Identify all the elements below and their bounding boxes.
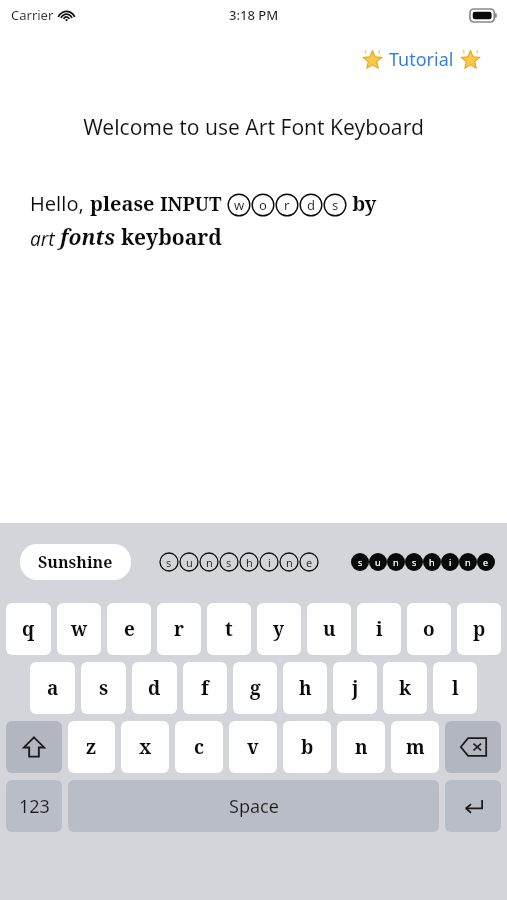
button[interactable]: s <box>155 548 323 576</box>
staticText: o <box>259 196 267 214</box>
staticText: u <box>375 556 381 568</box>
staticText: d <box>307 196 315 214</box>
staticText: r <box>284 196 290 214</box>
button[interactable]: Return <box>445 780 501 832</box>
button[interactable]: Sunshine <box>20 544 131 580</box>
staticText: n <box>393 556 399 568</box>
button[interactable]: f <box>183 662 227 714</box>
button[interactable]: e <box>107 603 151 655</box>
button[interactable]: Shift <box>6 721 62 773</box>
staticText: s <box>358 556 363 568</box>
staticText: Hello, <box>30 190 90 217</box>
staticText: w <box>234 196 245 214</box>
staticText: by <box>347 190 377 217</box>
staticText: l <box>452 675 459 701</box>
staticText: u <box>323 616 336 642</box>
staticText: p <box>473 616 486 642</box>
staticText: please <box>90 190 160 217</box>
staticText: fonts <box>60 223 121 252</box>
button[interactable]: s <box>81 662 126 714</box>
staticText: d <box>148 675 161 701</box>
button[interactable]: y <box>257 603 301 655</box>
button[interactable]: r <box>157 603 201 655</box>
staticText: o <box>423 616 435 642</box>
staticText: x <box>139 734 152 760</box>
button[interactable]: x <box>121 721 169 773</box>
staticText: w <box>71 616 88 642</box>
button[interactable]: m <box>391 721 439 773</box>
staticText: Welcome to use Art Font Keyboard <box>14 113 493 142</box>
button[interactable]: a <box>30 662 75 714</box>
staticText: i <box>449 556 452 568</box>
staticText: r <box>174 616 184 642</box>
staticText: keyboard <box>121 223 222 252</box>
button[interactable]: o <box>407 603 451 655</box>
staticText: e <box>124 616 135 642</box>
staticText: Tutorial <box>389 47 454 72</box>
staticText: j <box>352 675 359 701</box>
staticText: i <box>268 555 271 570</box>
staticText: m <box>406 734 425 760</box>
button[interactable]: w <box>57 603 101 655</box>
staticText: INPUT <box>160 191 227 217</box>
staticText: t <box>225 616 233 642</box>
staticText: c <box>194 734 205 760</box>
staticText: v <box>247 734 259 760</box>
staticText: art <box>30 226 60 252</box>
staticText: h <box>246 555 253 570</box>
staticText: b <box>301 734 314 760</box>
button[interactable]: s <box>347 549 499 575</box>
staticText: h <box>299 675 312 701</box>
staticText: a <box>47 675 59 701</box>
button[interactable]: b <box>283 721 331 773</box>
button[interactable]: h <box>283 662 327 714</box>
staticText: s <box>412 556 417 568</box>
staticText: 123 <box>19 794 50 819</box>
staticText: n <box>206 555 213 570</box>
staticText: f <box>201 675 209 701</box>
staticText: s <box>226 555 232 570</box>
staticText: 3:18 PM <box>229 6 279 24</box>
staticText: g <box>250 675 261 701</box>
staticText: s <box>99 675 109 701</box>
staticText: q <box>22 616 35 642</box>
staticText: y <box>273 616 285 642</box>
button[interactable]: k <box>383 662 427 714</box>
staticText: e <box>306 555 313 570</box>
button[interactable]: u <box>307 603 351 655</box>
staticText: n <box>286 555 293 570</box>
button[interactable]: Backspace <box>445 721 501 773</box>
button[interactable]: Tutorial <box>358 44 485 75</box>
button[interactable]: d <box>132 662 177 714</box>
button[interactable]: Space <box>68 780 439 832</box>
button[interactable]: t <box>207 603 251 655</box>
button[interactable]: v <box>229 721 277 773</box>
staticText: z <box>86 734 97 760</box>
button[interactable]: 123 <box>6 780 62 832</box>
staticText: s <box>166 555 172 570</box>
staticText: e <box>483 556 489 568</box>
button[interactable]: i <box>357 603 401 655</box>
button[interactable]: c <box>175 721 223 773</box>
staticText: Carrier <box>11 6 54 24</box>
staticText: i <box>376 616 383 642</box>
button[interactable]: g <box>233 662 277 714</box>
button[interactable]: z <box>68 721 115 773</box>
staticText: u <box>186 555 193 570</box>
button[interactable]: p <box>457 603 501 655</box>
staticText: k <box>399 675 412 701</box>
staticText: Space <box>229 794 279 819</box>
staticText: n <box>355 734 368 760</box>
staticText: Sunshine <box>38 551 113 573</box>
button[interactable]: j <box>333 662 377 714</box>
button[interactable]: l <box>433 662 477 714</box>
staticText: h <box>429 556 435 568</box>
staticText: s <box>332 196 339 214</box>
button[interactable]: q <box>6 603 51 655</box>
button[interactable]: n <box>337 721 385 773</box>
staticText: n <box>465 556 471 568</box>
